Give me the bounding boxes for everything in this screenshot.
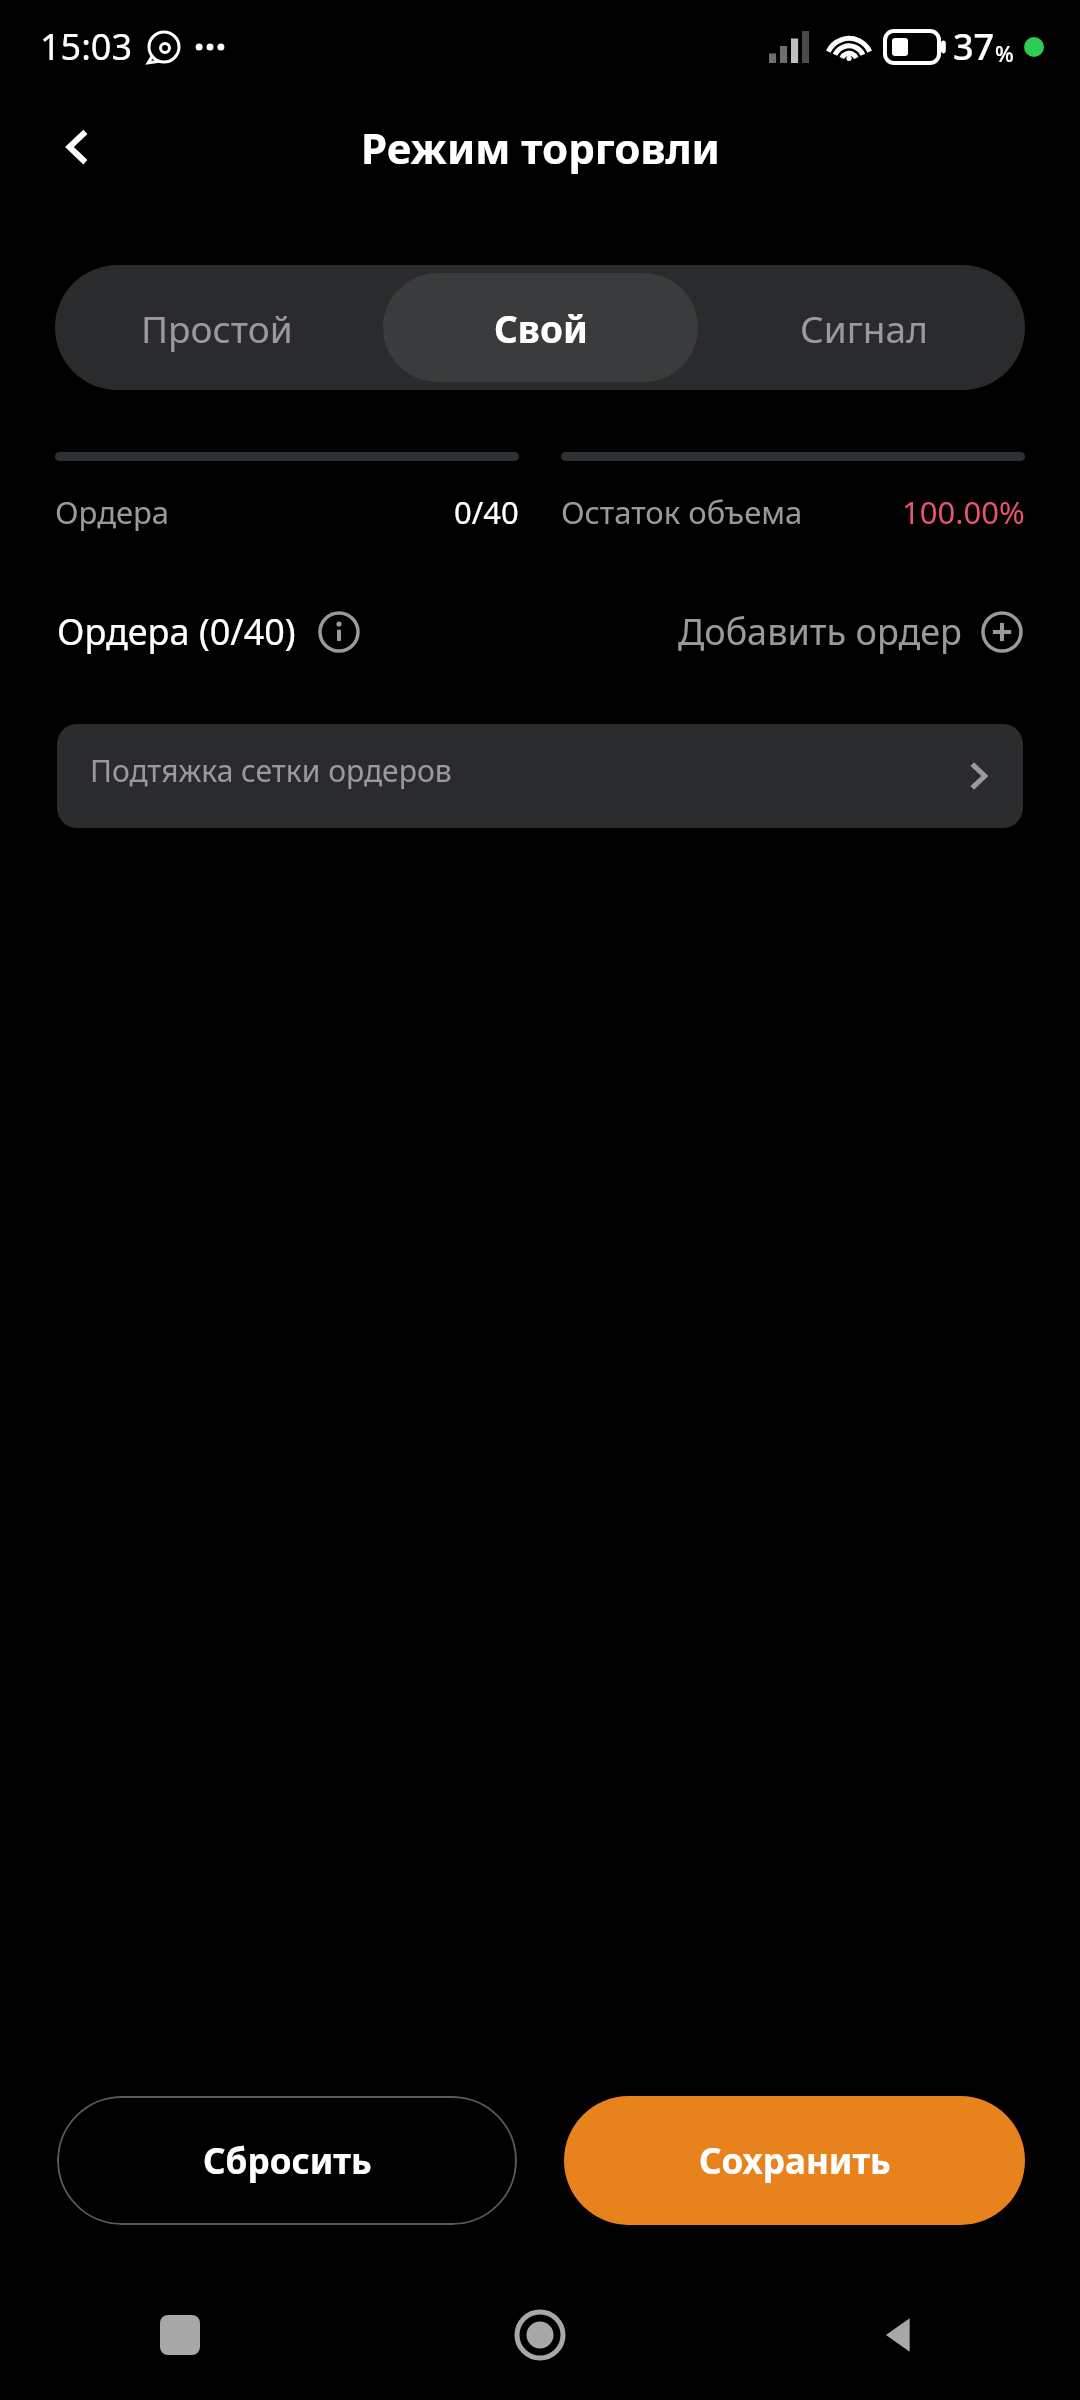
button[interactable]: Подтяжка сетки ордеров: [57, 724, 1023, 828]
button[interactable]: Назад: [42, 110, 116, 184]
staticText: Подтяжка сетки ордеров: [90, 750, 452, 791]
staticText: Свой: [494, 303, 588, 353]
button[interactable]: Сигнал: [706, 273, 1021, 382]
button[interactable]: Главный экран: [360, 2270, 720, 2400]
staticText: 15:03: [40, 22, 133, 71]
button[interactable]: Последние приложения: [0, 2270, 360, 2400]
staticText: Добавить ордер: [678, 607, 963, 656]
staticText: Сохранить: [699, 2137, 891, 2185]
staticText: 100.00%: [902, 491, 1025, 533]
staticText: %: [995, 38, 1014, 68]
staticText: Ордера: [55, 491, 170, 533]
staticText: Простой: [141, 303, 293, 353]
button[interactable]: Ордера (0/40): [57, 607, 360, 656]
button[interactable]: Сохранить: [564, 2096, 1025, 2225]
button[interactable]: Назад: [720, 2270, 1080, 2400]
button[interactable]: Сбросить: [57, 2096, 517, 2225]
staticText: Остаток объема: [561, 491, 803, 533]
staticText: 0/40: [454, 491, 519, 533]
other: Информация: [318, 611, 360, 653]
staticText: Ордера (0/40): [57, 607, 296, 656]
staticText: Сбросить: [203, 2137, 372, 2185]
button[interactable]: Добавить ордер: [678, 607, 1023, 656]
staticText: 37: [953, 22, 995, 71]
staticText: Режим торговли: [361, 119, 720, 176]
button[interactable]: Свой: [383, 273, 698, 382]
staticText: Сигнал: [800, 303, 928, 353]
button[interactable]: Простой: [59, 273, 375, 382]
